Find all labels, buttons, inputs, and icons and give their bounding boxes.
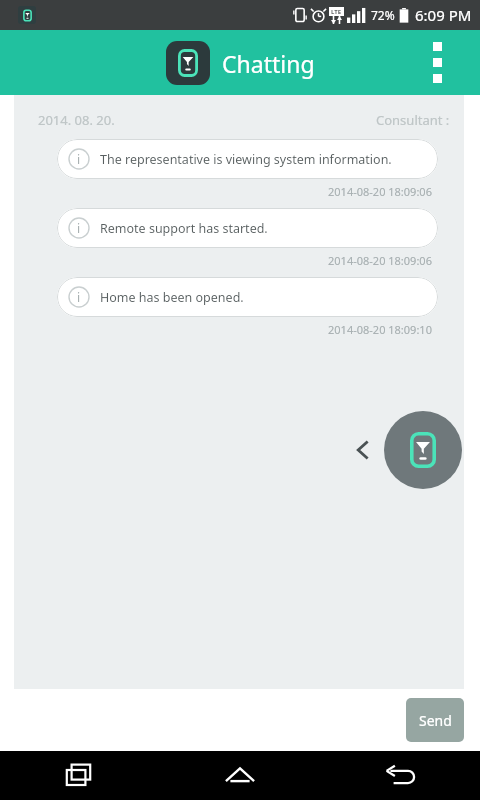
- staticText: Remote support has started.: [100, 220, 268, 237]
- staticText: i: [77, 151, 81, 167]
- staticText: Consultant :: [376, 111, 450, 129]
- button[interactable]: Remote support: [384, 411, 462, 489]
- button[interactable]: Home: [160, 751, 320, 800]
- button[interactable]: More options: [427, 36, 448, 89]
- button[interactable]: i: [57, 277, 438, 317]
- button[interactable]: Recents: [0, 751, 160, 800]
- staticText: Send: [419, 711, 452, 730]
- staticText: 2014-08-20 18:09:10: [328, 322, 432, 337]
- button[interactable]: Back: [320, 751, 480, 800]
- staticText: 6:09 PM: [415, 5, 472, 25]
- staticText: 2014-08-20 18:09:06: [328, 253, 432, 268]
- staticText: Home has been opened.: [100, 289, 244, 306]
- staticText: 2014. 08. 20.: [38, 111, 115, 129]
- staticText: The representative is viewing system inf…: [100, 151, 392, 168]
- button[interactable]: i: [57, 139, 438, 179]
- staticText: 72%: [371, 7, 395, 23]
- staticText: Chatting: [222, 48, 315, 79]
- staticText: 2014-08-20 18:09:06: [328, 184, 432, 199]
- button[interactable]: Send: [406, 698, 464, 742]
- staticText: i: [77, 220, 81, 236]
- button[interactable]: i: [57, 208, 438, 248]
- staticText: i: [77, 289, 81, 305]
- staticText: LTE: [331, 8, 342, 16]
- button[interactable]: Collapse: [346, 433, 380, 467]
